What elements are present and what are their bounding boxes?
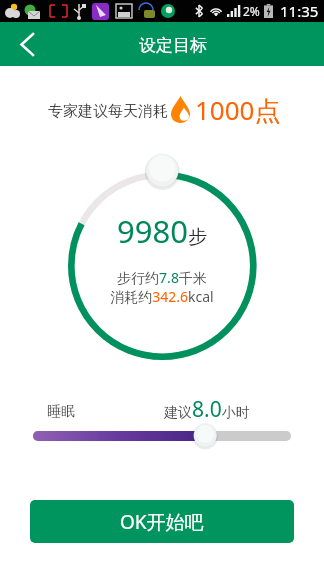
button[interactable]: OK开始吧 <box>30 500 294 543</box>
staticText: OK开始吧 <box>120 509 204 535</box>
button[interactable]: Sleep hours slider <box>33 431 291 441</box>
staticText: 设定目标 <box>139 35 207 56</box>
button[interactable]: Back <box>6 22 48 66</box>
staticText: 消耗约342.6kcal <box>42 287 282 306</box>
staticText: 步行约7.8千米 <box>42 268 282 287</box>
staticText: 专家建议每天消耗 <box>48 102 168 121</box>
staticText: 11:35 <box>280 1 319 21</box>
staticText: 1000点 <box>195 92 281 124</box>
staticText: 建议8.0小时 <box>164 395 250 424</box>
staticText: 睡眠 <box>47 403 75 421</box>
staticText: 9980步 <box>42 210 282 252</box>
staticText: 2% <box>243 3 260 19</box>
